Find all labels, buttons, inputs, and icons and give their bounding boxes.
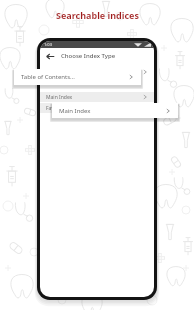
staticText: Table of Contents... [46, 69, 142, 76]
staticText: Favorites & Notes [46, 105, 142, 112]
button[interactable]: Back [45, 51, 56, 62]
staticText: Main Index [46, 94, 142, 101]
button[interactable]: Main Index [52, 103, 178, 118]
staticText: Choose Index Type [61, 52, 116, 60]
button[interactable]: Main Index [40, 92, 154, 102]
staticText: Main Index [59, 107, 165, 115]
staticText: Searchable indices [56, 9, 139, 21]
button[interactable]: Table of Contents... [40, 66, 154, 78]
button[interactable]: Table of Contents... [14, 69, 141, 85]
staticText: 1:03 [44, 42, 52, 47]
button[interactable]: Favorites & Notes [40, 103, 154, 113]
staticText: Table of Contents... [21, 73, 128, 81]
